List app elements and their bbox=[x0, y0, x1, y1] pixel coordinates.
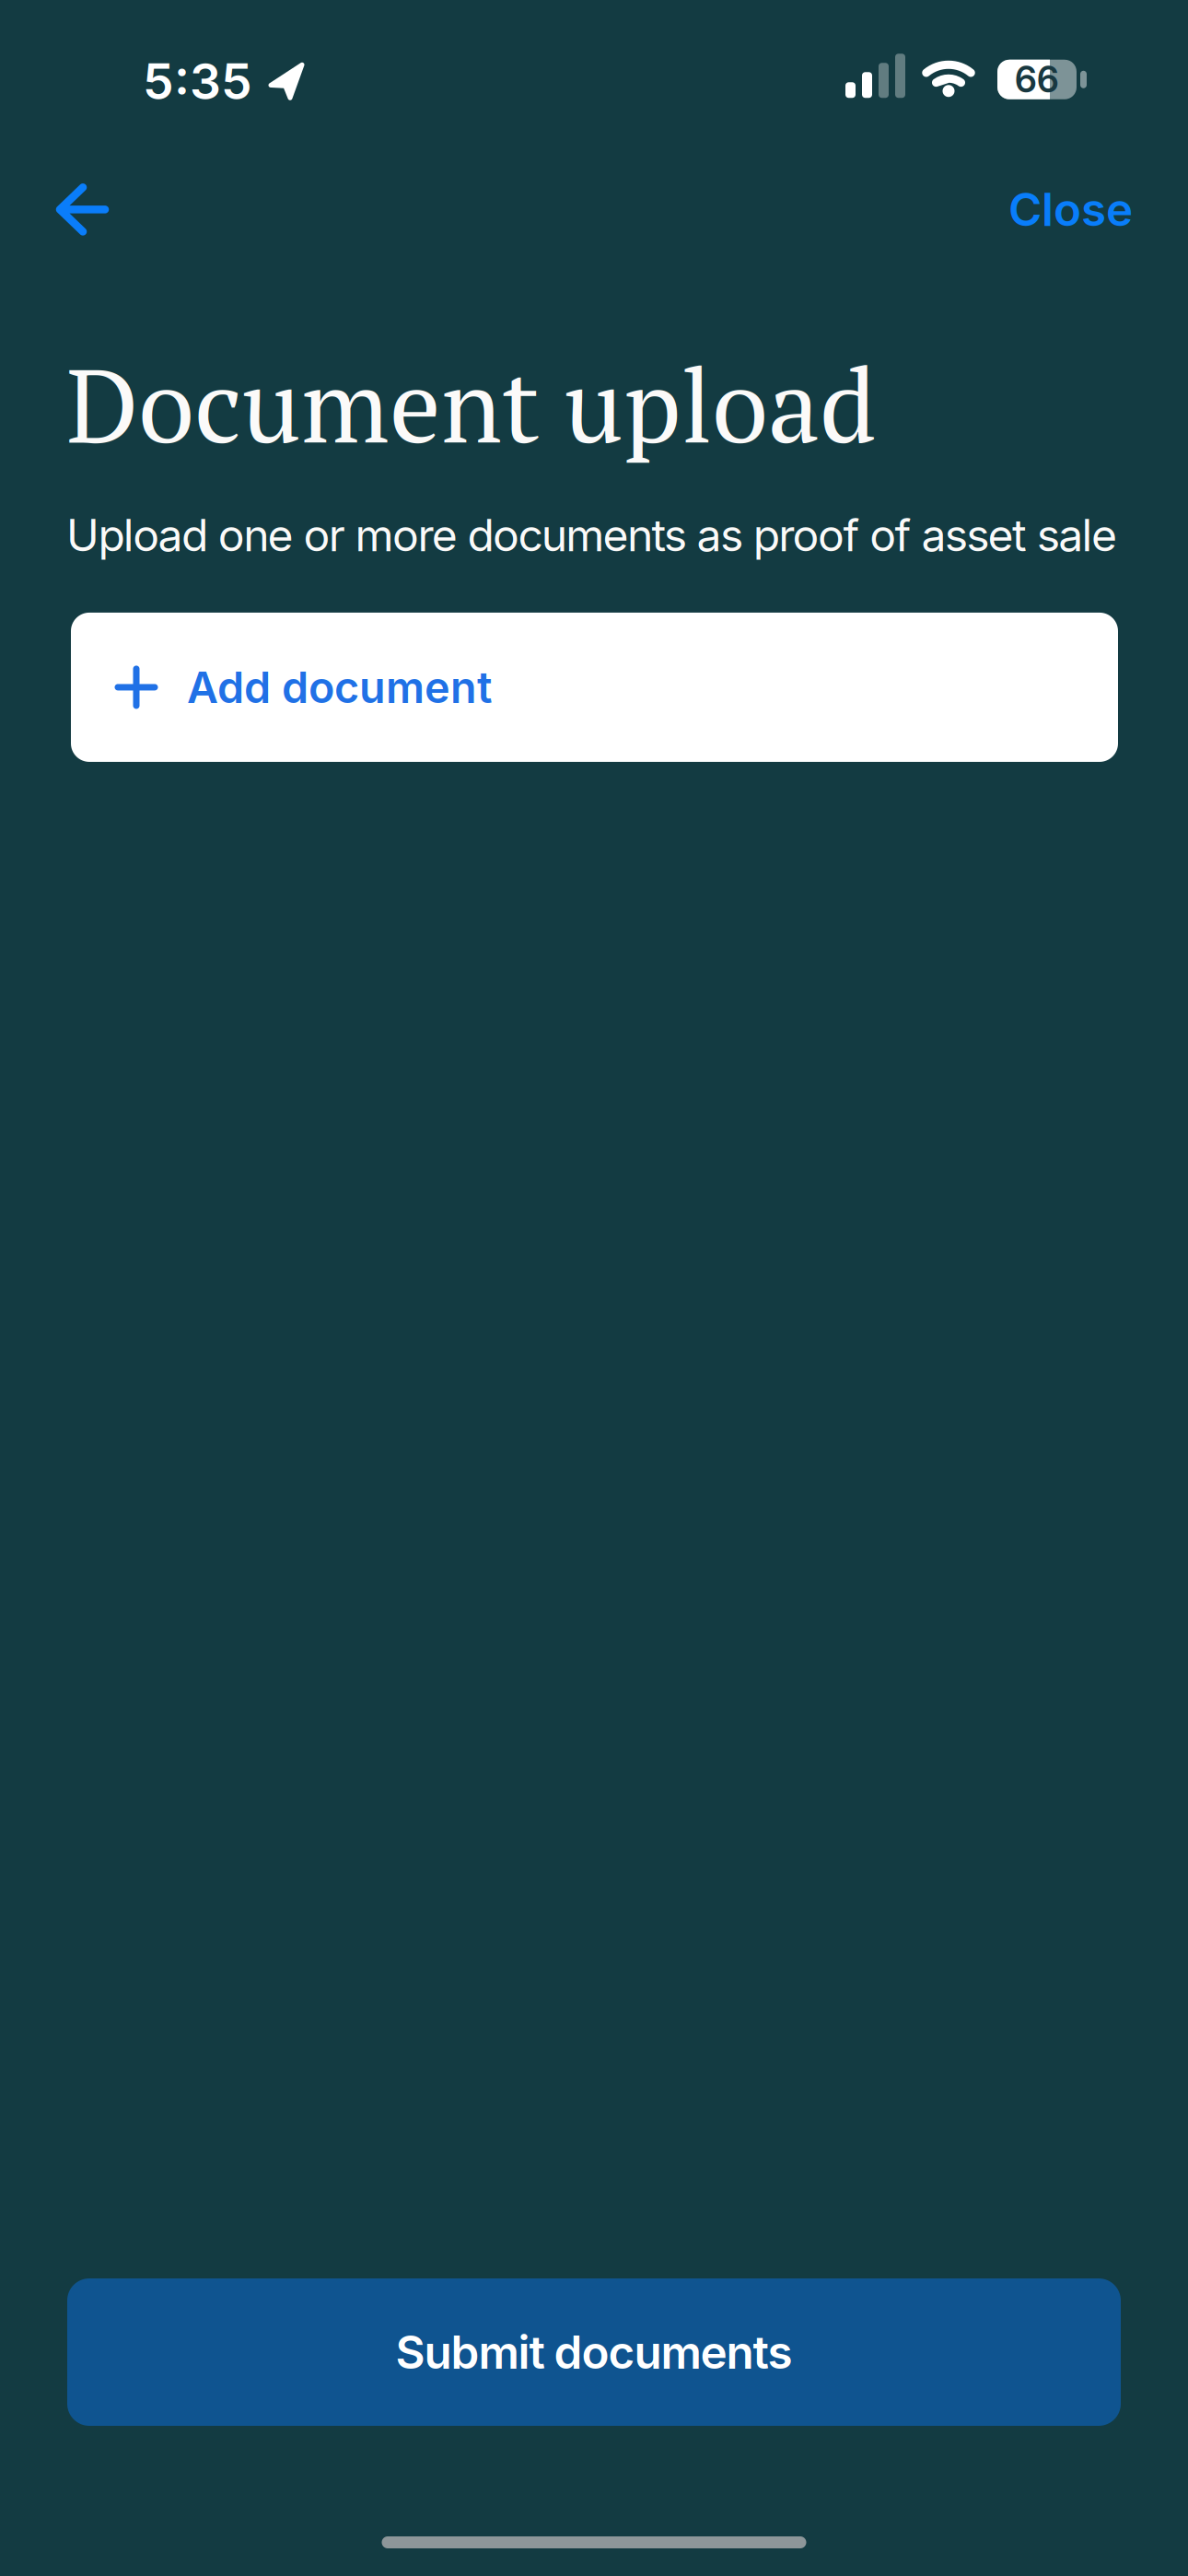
staticText: 66 bbox=[1015, 58, 1059, 101]
staticText: Document upload bbox=[66, 336, 876, 472]
staticText: Submit documents bbox=[396, 2325, 792, 2380]
button[interactable]: Back bbox=[58, 185, 108, 234]
staticText: Close bbox=[1008, 182, 1133, 237]
staticText: Add document bbox=[187, 661, 492, 713]
staticText: 5:35 bbox=[143, 52, 252, 111]
button[interactable]: Add document bbox=[71, 613, 1118, 762]
button[interactable]: Close bbox=[1008, 182, 1133, 237]
staticText: Upload one or more documents as proof of… bbox=[66, 508, 1117, 562]
button[interactable]: Submit documents bbox=[67, 2278, 1121, 2426]
